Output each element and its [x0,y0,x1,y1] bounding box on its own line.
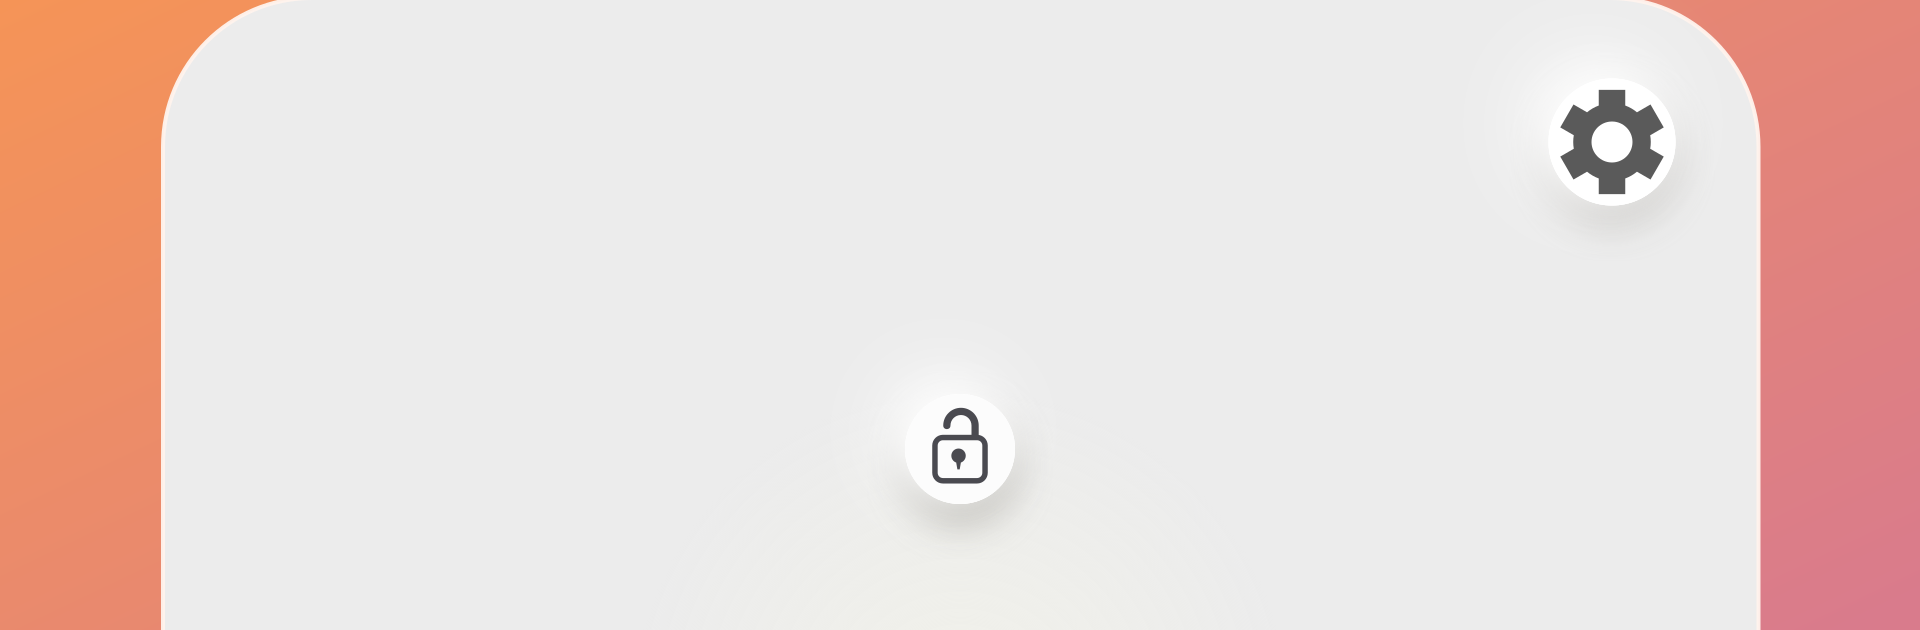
button[interactable]: Settings [1548,78,1675,205]
button[interactable]: Unlock [905,394,1015,504]
